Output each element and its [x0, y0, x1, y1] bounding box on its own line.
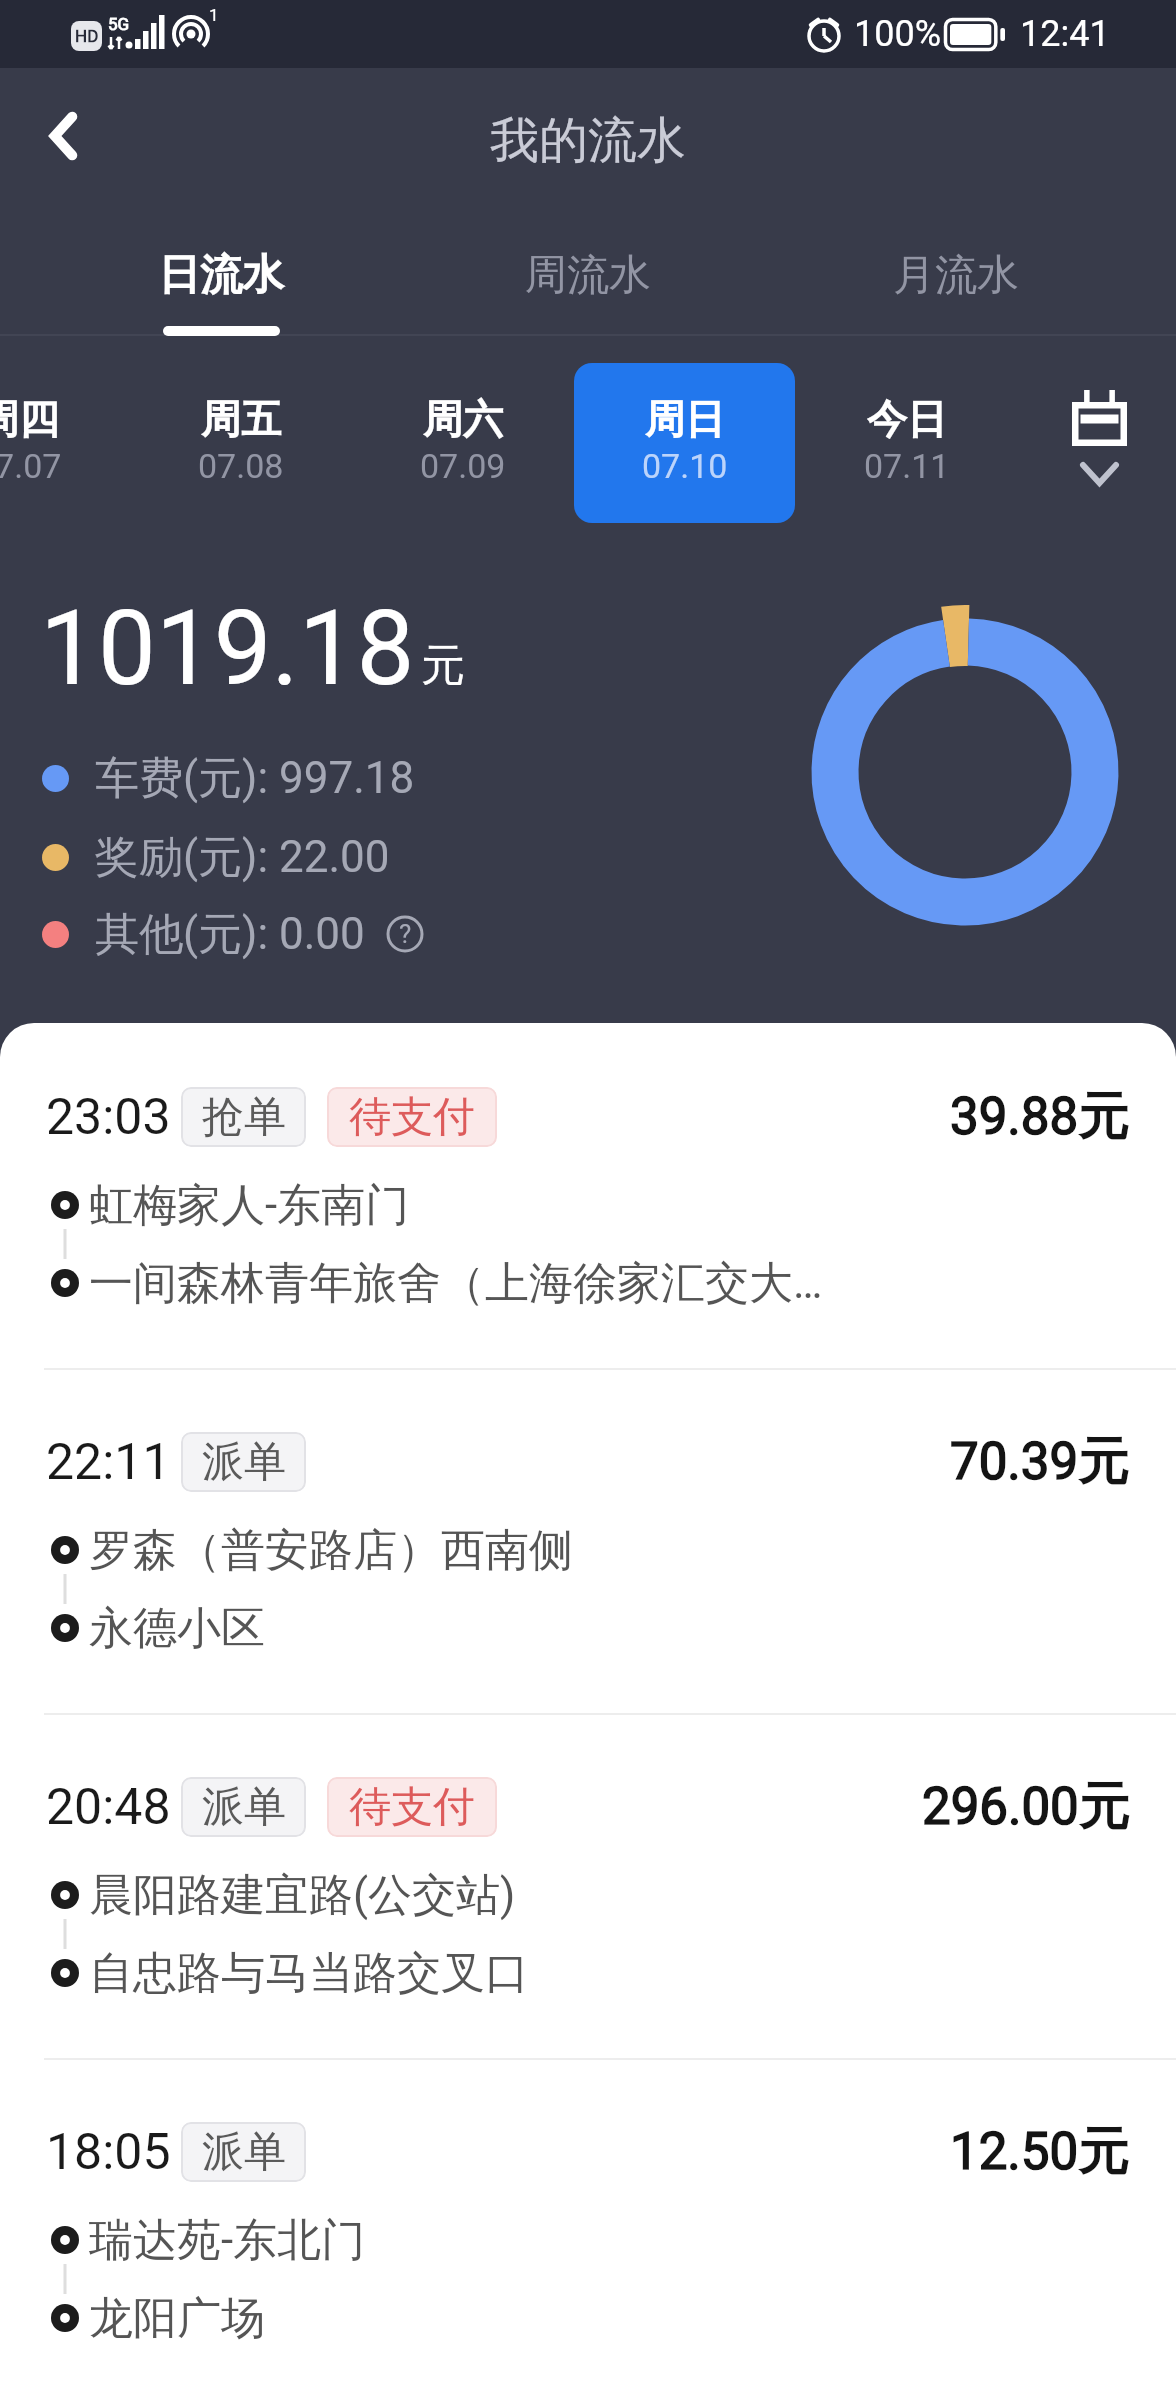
- staticText: 5G: [108, 14, 130, 34]
- staticText: 07.11: [864, 446, 950, 486]
- staticText: 1019.18: [40, 588, 415, 709]
- button[interactable]: 23:03: [0, 1023, 1176, 1368]
- staticText: 派单: [202, 2126, 286, 2179]
- staticText: 70.39元: [950, 1430, 1130, 1494]
- staticText: 18:05: [46, 2123, 171, 2182]
- staticText: 日流水: [158, 249, 284, 302]
- button[interactable]: 日流水: [101, 222, 341, 352]
- button[interactable]: What is this: [385, 914, 425, 954]
- staticText: 23:03: [46, 1088, 171, 1147]
- staticText: 周六: [423, 394, 503, 444]
- staticText: 瑞达苑-东北门: [89, 2213, 366, 2268]
- staticText: 20:48: [46, 1778, 171, 1837]
- staticText: 奖励(元): 22.00: [95, 830, 390, 885]
- staticText: 今日: [867, 394, 947, 444]
- staticText: ?: [399, 919, 412, 949]
- button[interactable]: Back: [24, 96, 104, 176]
- staticText: 车费(元): 997.18: [95, 751, 415, 806]
- button[interactable]: 周五: [130, 363, 351, 523]
- staticText: 月流水: [893, 249, 1019, 302]
- staticText: 1: [209, 5, 219, 25]
- staticText: 39.88元: [950, 1085, 1130, 1149]
- button[interactable]: 周六: [352, 363, 573, 523]
- button[interactable]: 月流水: [836, 222, 1076, 352]
- button[interactable]: 周流水: [468, 222, 708, 352]
- staticText: 07.10: [642, 446, 728, 486]
- staticText: 07.09: [420, 446, 506, 486]
- button[interactable]: 20:48: [0, 1713, 1176, 2058]
- staticText: 12.50元: [950, 2120, 1130, 2184]
- staticText: 100%: [854, 13, 942, 55]
- staticText: HD: [75, 26, 99, 46]
- staticText: 我的流水: [490, 110, 686, 172]
- staticText: 虹梅家人-东南门: [89, 1178, 410, 1233]
- button[interactable]: 18:05: [0, 2058, 1176, 2400]
- staticText: 一间森林青年旅舍（上海徐家汇交大…: [89, 1256, 823, 1311]
- staticText: 抢单: [202, 1091, 286, 1144]
- staticText: 296.00元: [922, 1775, 1130, 1839]
- staticText: 周日: [645, 394, 725, 444]
- staticText: 派单: [202, 1436, 286, 1489]
- staticText: 元: [421, 638, 465, 693]
- staticText: 罗森（普安路店）西南侧: [89, 1523, 573, 1578]
- button[interactable]: 周四: [0, 363, 129, 523]
- staticText: 待支付: [349, 1091, 475, 1144]
- staticText: 龙阳广场: [89, 2291, 265, 2346]
- staticText: 自忠路与马当路交叉口: [89, 1946, 529, 2001]
- staticText: 永德小区: [89, 1601, 265, 1656]
- staticText: 其他(元): 0.00: [95, 907, 365, 962]
- staticText: 晨阳路建宜路(公交站): [89, 1868, 516, 1923]
- staticText: 待支付: [349, 1781, 475, 1834]
- button[interactable]: 今日: [796, 363, 1017, 523]
- staticText: 周四: [0, 394, 59, 444]
- staticText: 07.07: [0, 446, 62, 486]
- staticText: 派单: [202, 1781, 286, 1834]
- staticText: 12:41: [1020, 13, 1110, 55]
- button[interactable]: 周日: [574, 363, 795, 523]
- button[interactable]: Choose date: [1029, 363, 1169, 523]
- staticText: 周流水: [525, 249, 651, 302]
- staticText: 22:11: [46, 1433, 171, 1492]
- staticText: 07.08: [198, 446, 284, 486]
- staticText: 周五: [201, 394, 281, 444]
- button[interactable]: 22:11: [0, 1368, 1176, 1713]
